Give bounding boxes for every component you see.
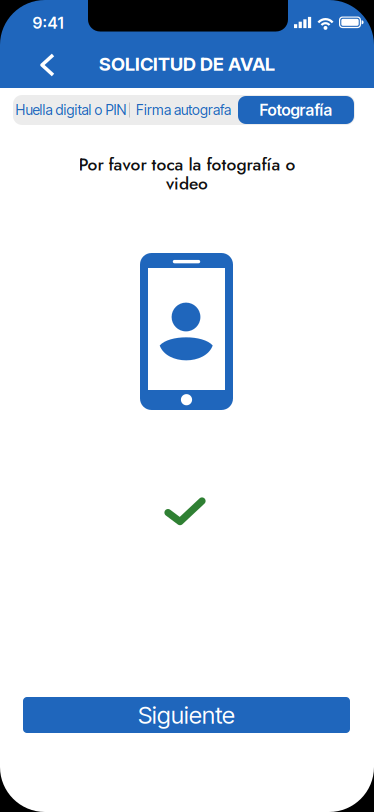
staticText: SOLICITUD DE AVAL xyxy=(99,53,275,75)
staticText: video xyxy=(166,171,208,196)
staticText: Firma autografa xyxy=(136,101,231,118)
button[interactable]: Atrás xyxy=(26,43,70,87)
staticText: Fotografía xyxy=(259,100,332,120)
staticText: Siguiente xyxy=(138,700,235,729)
staticText: 9:41 xyxy=(32,13,63,33)
button[interactable]: Siguiente xyxy=(23,697,350,733)
button[interactable]: Fotografía xyxy=(238,96,354,124)
button[interactable]: Tomar fotografía xyxy=(140,253,233,410)
staticText: Por favor toca la fotografía o xyxy=(78,152,295,177)
staticText: Huella digital o PIN xyxy=(15,101,126,118)
button[interactable]: Firma autografa xyxy=(130,95,237,125)
button[interactable]: Huella digital o PIN xyxy=(13,95,129,125)
